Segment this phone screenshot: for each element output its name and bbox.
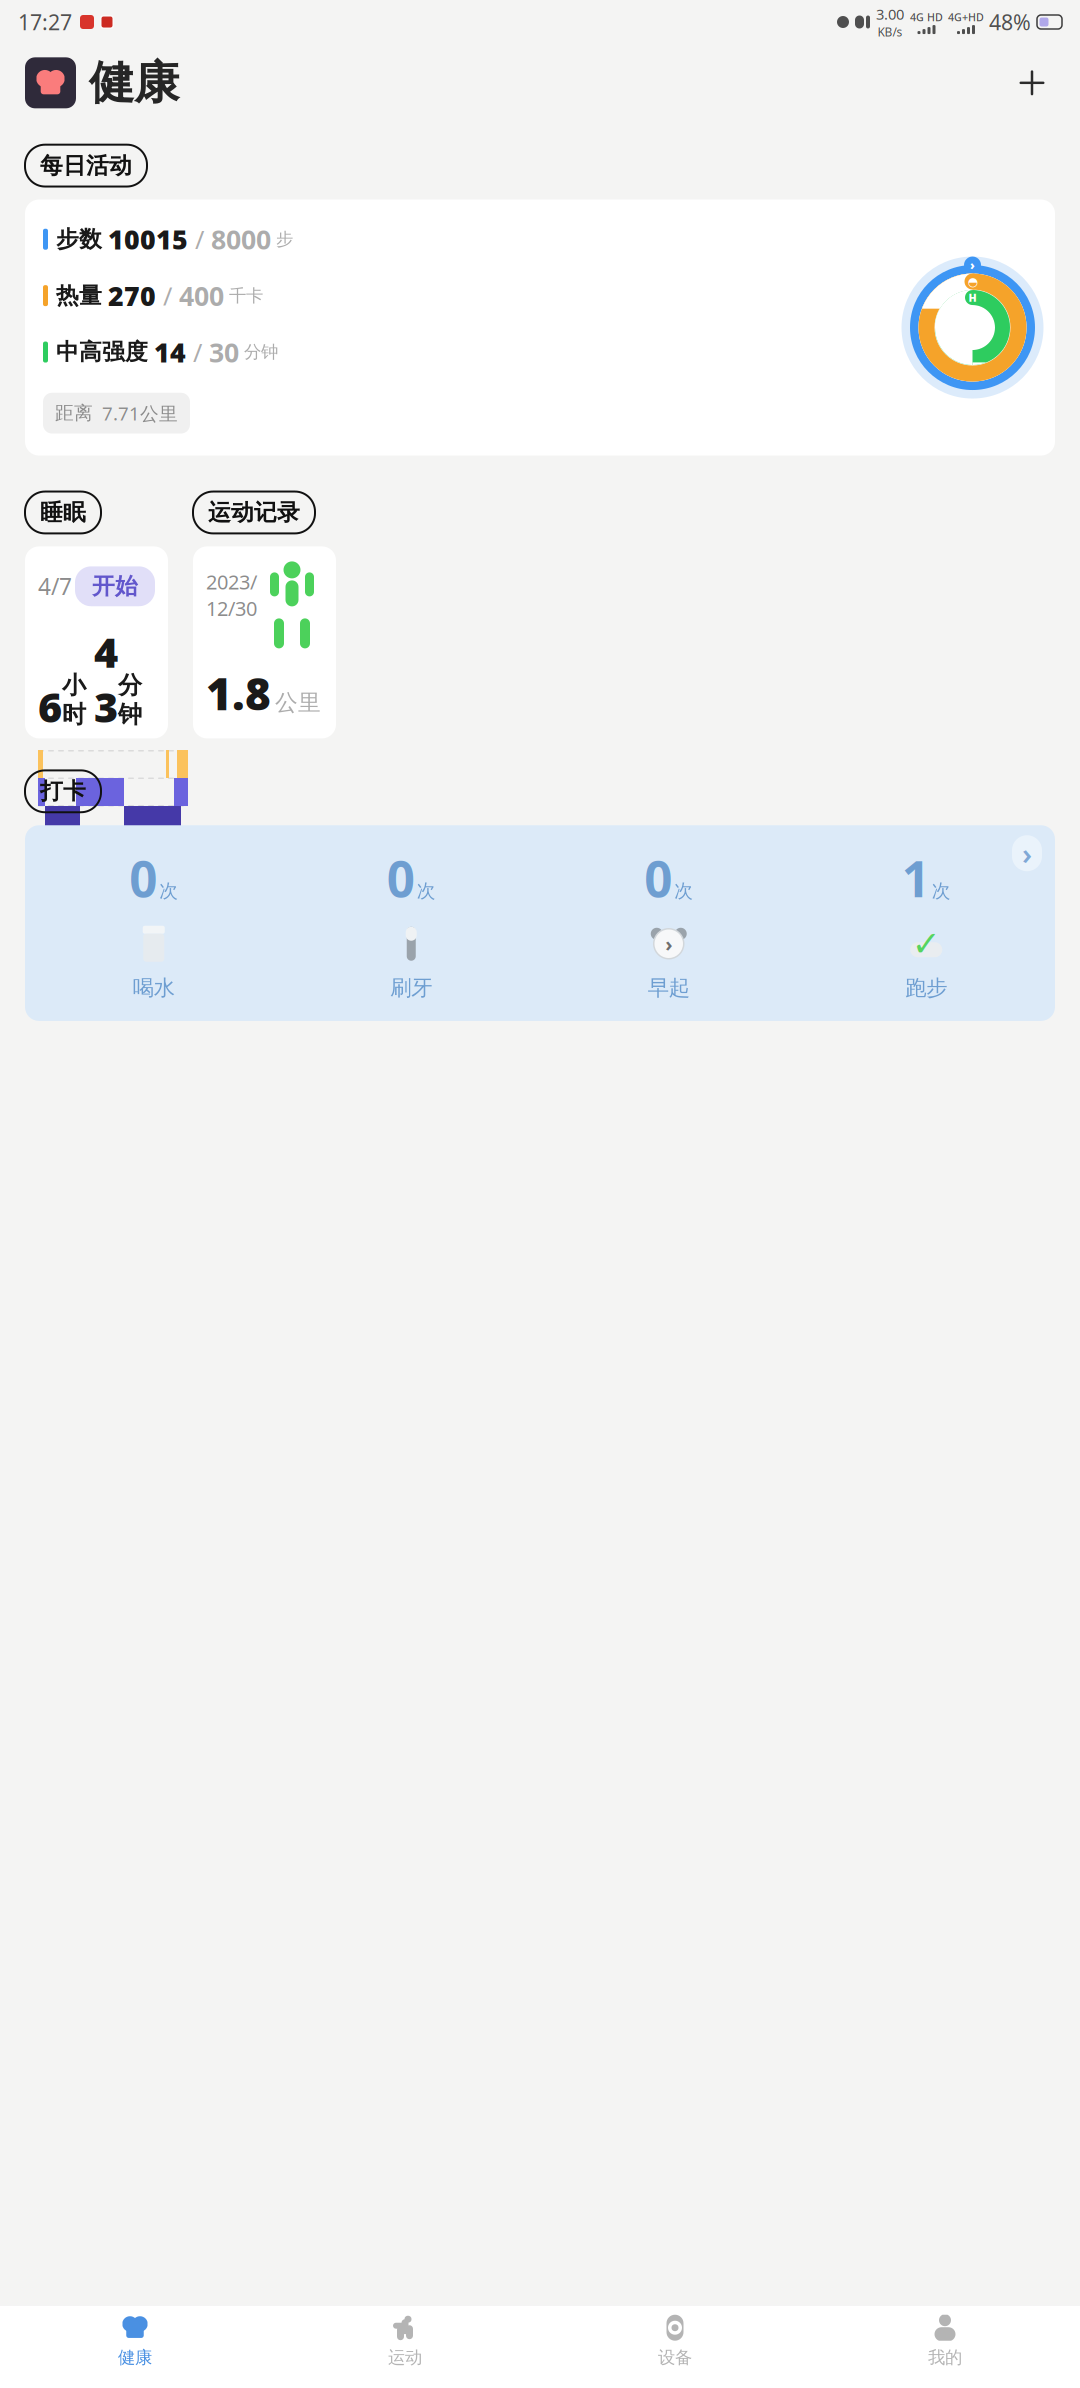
staticText: 中高强度 bbox=[56, 338, 148, 366]
staticText: 跑步 bbox=[905, 975, 947, 1001]
staticText: 2023/12/30 bbox=[206, 568, 257, 621]
staticText: › bbox=[970, 257, 975, 273]
button[interactable]: 打卡 bbox=[25, 770, 101, 812]
staticText: 0 bbox=[644, 845, 672, 911]
staticText: 4G HD bbox=[910, 10, 943, 24]
staticText: 健康 bbox=[118, 2347, 152, 2368]
staticText: 运动记录 bbox=[208, 499, 300, 526]
staticText: 睡眠 bbox=[40, 499, 86, 526]
button[interactable]: 0 bbox=[282, 845, 540, 1001]
staticText: 4/7 bbox=[38, 571, 72, 601]
staticText: 17:27 bbox=[18, 8, 72, 36]
staticText: 次 bbox=[674, 879, 693, 902]
button[interactable]: 步数 bbox=[25, 199, 1055, 455]
button[interactable]: 我的 bbox=[810, 2306, 1080, 2376]
staticText: 14 bbox=[154, 334, 186, 370]
staticText: 次 bbox=[417, 879, 436, 902]
staticText: 分钟 bbox=[118, 670, 142, 729]
staticText: › bbox=[665, 930, 672, 957]
staticText: 4G+HD bbox=[948, 10, 984, 24]
staticText: 步 bbox=[276, 229, 293, 250]
staticText: 6 bbox=[38, 679, 62, 734]
staticText: 开始 bbox=[92, 572, 138, 600]
staticText: 3.00 bbox=[876, 4, 904, 24]
staticText: 8000 bbox=[211, 221, 271, 257]
button[interactable]: 2023/12/30 bbox=[193, 546, 336, 738]
staticText: 分钟 bbox=[244, 341, 278, 363]
staticText: 270 bbox=[108, 278, 156, 313]
staticText: 喝水 bbox=[133, 975, 175, 1001]
staticText: 小时 bbox=[62, 670, 86, 729]
staticText: 打卡 bbox=[40, 777, 86, 805]
staticText: 步数 bbox=[56, 225, 102, 253]
staticText: / bbox=[163, 279, 172, 312]
staticText: 公里 bbox=[275, 689, 321, 717]
button[interactable]: More check-in items bbox=[1012, 835, 1042, 871]
button[interactable]: 每日活动 bbox=[25, 145, 147, 186]
staticText: 我的 bbox=[928, 2347, 962, 2368]
staticText: 48% bbox=[989, 8, 1031, 36]
staticText: 1 bbox=[902, 845, 930, 911]
staticText: 刷牙 bbox=[390, 975, 432, 1001]
staticText: / bbox=[195, 222, 204, 256]
staticText: ✓ bbox=[912, 924, 941, 963]
staticText: 1.8 bbox=[206, 664, 271, 722]
button[interactable]: 0 bbox=[25, 845, 282, 1001]
staticText: 43 bbox=[94, 624, 118, 734]
staticText: KB/s bbox=[877, 24, 902, 40]
staticText: 设备 bbox=[658, 2347, 692, 2368]
staticText: 7.71公里 bbox=[102, 401, 178, 426]
staticText: / bbox=[193, 335, 202, 369]
staticText: ◓ bbox=[967, 275, 977, 288]
button[interactable]: 睡眠 bbox=[25, 492, 101, 533]
button[interactable]: 健康 bbox=[0, 2306, 270, 2376]
button[interactable]: 0 bbox=[540, 845, 797, 1001]
button[interactable]: 运动 bbox=[270, 2306, 540, 2376]
staticText: › bbox=[1022, 834, 1032, 873]
staticText: H bbox=[968, 290, 976, 305]
staticText: 次 bbox=[159, 879, 178, 902]
staticText: 运动 bbox=[388, 2347, 422, 2368]
staticText: 10015 bbox=[108, 221, 188, 257]
staticText: 400 bbox=[179, 278, 224, 313]
staticText: 热量 bbox=[56, 282, 102, 309]
staticText: 千卡 bbox=[229, 285, 263, 306]
button[interactable]: 4/7 bbox=[25, 546, 168, 738]
staticText: 0 bbox=[129, 845, 157, 911]
staticText: 早起 bbox=[648, 975, 690, 1001]
button[interactable]: 运动记录 bbox=[193, 492, 315, 533]
staticText: 健康 bbox=[89, 55, 179, 111]
staticText: 每日活动 bbox=[40, 152, 132, 179]
staticText: 距离 bbox=[55, 402, 93, 425]
staticText: 次 bbox=[932, 879, 951, 902]
staticText: 0 bbox=[387, 845, 415, 911]
staticText: 30 bbox=[209, 334, 239, 370]
button[interactable]: 1 bbox=[797, 845, 1055, 1001]
button[interactable]: Add bbox=[1009, 60, 1055, 106]
button[interactable]: 设备 bbox=[540, 2306, 810, 2376]
